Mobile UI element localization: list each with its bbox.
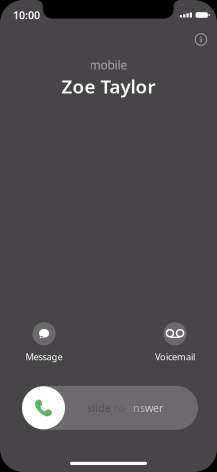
staticText: Voicemail: [155, 350, 195, 363]
staticText: slide: [87, 401, 111, 415]
staticText: wer: [145, 401, 163, 415]
staticText: ns: [133, 401, 145, 415]
staticText: mobile: [89, 57, 127, 73]
staticText: to: [111, 401, 127, 415]
staticText: a: [127, 401, 133, 415]
button[interactable]: Voicemail: [143, 322, 207, 363]
button[interactable]: Call details: [188, 26, 214, 52]
button[interactable]: slide: [22, 386, 198, 430]
staticText: Message: [25, 350, 62, 363]
staticText: Zoe Taylor: [61, 74, 155, 99]
button[interactable]: Message: [12, 322, 76, 363]
staticText: 10:00: [13, 8, 40, 22]
